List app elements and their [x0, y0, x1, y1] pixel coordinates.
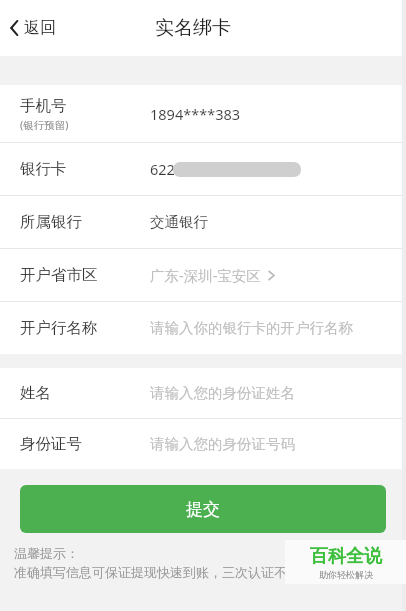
- button[interactable]: 返回: [10, 0, 56, 56]
- staticText: 返回: [24, 18, 56, 38]
- staticText: 请输入您的身份证号码: [150, 435, 295, 453]
- button[interactable]: 银行卡: [0, 143, 406, 196]
- staticText: 准确填写信息可保证提现快速到账，三次认证不通过，: [14, 564, 326, 580]
- button[interactable]: 开户行名称: [0, 302, 406, 354]
- staticText: 助你轻松解决: [319, 569, 373, 580]
- staticText: 温馨提示：: [14, 545, 79, 561]
- staticText: 请输入你的银行卡的开户行名称: [150, 319, 353, 337]
- button[interactable]: 提交: [20, 485, 386, 533]
- staticText: 开户省市区: [20, 265, 98, 285]
- staticText: 提交: [186, 499, 220, 520]
- staticText: 百科全说: [310, 545, 382, 568]
- staticText: 姓名: [20, 383, 51, 403]
- staticText: 手机号: [20, 96, 67, 116]
- staticText: 622: [150, 159, 175, 179]
- button[interactable]: 所属银行: [0, 196, 406, 249]
- staticText: 所属银行: [20, 212, 82, 232]
- button[interactable]: 手机号: [0, 85, 406, 143]
- button[interactable]: 身份证号: [0, 419, 406, 469]
- staticText: 广东-深圳-宝安区: [150, 265, 261, 285]
- button[interactable]: 姓名: [0, 368, 406, 419]
- staticText: 实名绑卡: [155, 16, 231, 40]
- button[interactable]: 开户省市区: [0, 249, 406, 302]
- staticText: 交通银行: [150, 213, 208, 231]
- staticText: 银行卡: [20, 159, 67, 179]
- staticText: 身份证号: [20, 434, 82, 454]
- staticText: (银行预留): [20, 118, 69, 132]
- staticText: 开户行名称: [20, 318, 98, 338]
- staticText: 1894****383: [150, 104, 241, 124]
- staticText: 请输入您的身份证姓名: [150, 384, 295, 402]
